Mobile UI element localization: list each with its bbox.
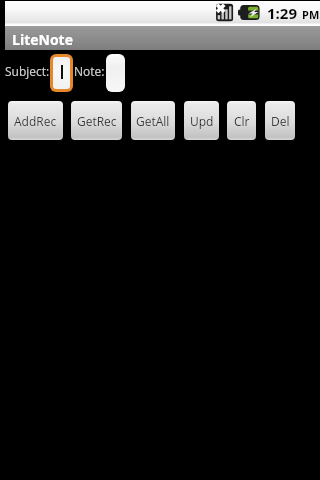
other: Battery charging bbox=[238, 5, 260, 20]
staticText: AddRec bbox=[14, 113, 57, 129]
staticText: Note: bbox=[74, 63, 105, 79]
other: Signal strength bbox=[211, 3, 234, 22]
staticText: PM bbox=[302, 7, 320, 22]
staticText: Subject: bbox=[5, 63, 50, 79]
staticText: GetAll bbox=[136, 113, 170, 129]
button[interactable]: AddRec bbox=[8, 101, 63, 140]
button[interactable]: Del bbox=[265, 101, 295, 140]
button[interactable]: Clr bbox=[227, 101, 256, 140]
staticText: Upd bbox=[190, 113, 214, 129]
button[interactable]: Upd bbox=[184, 101, 219, 140]
staticText: LiteNote bbox=[12, 30, 73, 49]
staticText: Del bbox=[271, 113, 290, 129]
button[interactable] bbox=[106, 54, 125, 92]
button[interactable]: GetAll bbox=[131, 101, 175, 140]
staticText: 1:29 bbox=[267, 3, 297, 23]
staticText: Clr bbox=[234, 113, 250, 129]
button[interactable]: GetRec bbox=[71, 101, 122, 140]
button[interactable] bbox=[53, 57, 70, 89]
staticText: GetRec bbox=[77, 113, 117, 129]
